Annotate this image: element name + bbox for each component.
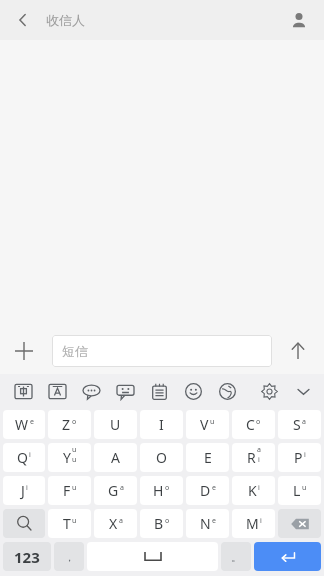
staticText: i [258,483,260,493]
staticText: F [63,481,71,500]
staticText: o [165,483,170,493]
staticText: S [293,415,301,434]
staticText: P [294,448,303,467]
staticText: u [72,483,77,493]
button[interactable]: K [232,476,275,505]
button[interactable]: B [140,509,183,538]
staticText: a [119,516,123,526]
staticText: T [63,514,71,533]
button[interactable]: Suggestions [74,374,108,408]
button[interactable]: Backspace [278,509,321,538]
staticText: W [15,415,29,434]
staticText: Z [62,415,71,434]
staticText: e [212,516,216,526]
staticText: u [72,516,77,526]
staticText: u [302,483,307,493]
button[interactable]: Q [3,443,45,472]
staticText: u [72,445,77,455]
staticText: u [72,455,77,465]
staticText: C [246,415,255,434]
staticText: o [72,417,77,427]
button[interactable]: Enter [254,542,321,571]
button[interactable]: Contacts [282,3,316,37]
staticText: i [260,516,262,526]
staticText: U [110,415,121,434]
button[interactable]: 。 [221,542,251,571]
button[interactable]: D [186,476,229,505]
button[interactable]: A [94,443,137,472]
staticText: N [200,514,211,533]
staticText: I [159,415,164,434]
button[interactable]: Message [108,374,142,408]
button[interactable]: U [94,410,137,439]
button[interactable]: I [140,410,183,439]
button[interactable]: M [232,509,275,538]
staticText: V [200,415,209,434]
staticText: i [29,450,31,460]
button[interactable]: Settings [252,374,286,408]
staticText: 收信人 [46,12,85,28]
staticText: E [204,448,212,467]
button[interactable]: Space [87,542,218,571]
staticText: X [109,514,118,533]
staticText: a [257,445,261,455]
button[interactable]: Z [48,410,91,439]
staticText: L [293,481,301,500]
button[interactable]: O [140,443,183,472]
button[interactable]: Chinese input [6,374,40,408]
button[interactable]: J [3,476,45,505]
button[interactable]: V [186,410,229,439]
staticText: e [30,417,34,427]
button[interactable]: H [140,476,183,505]
button[interactable]: E [186,443,229,472]
button[interactable]: Add attachment [6,333,42,369]
button[interactable]: G [94,476,137,505]
button[interactable]: N [186,509,229,538]
staticText: e [212,483,216,493]
button[interactable]: P [278,443,321,472]
staticText: H [153,481,164,500]
staticText: i [258,455,260,465]
button[interactable]: Send [280,333,316,369]
staticText: ， [64,550,75,564]
button[interactable]: ， [54,542,84,571]
staticText: O [156,448,167,467]
button[interactable]: Hide keyboard [286,374,320,408]
button[interactable]: T [48,509,91,538]
button[interactable]: Search [3,509,45,538]
button[interactable]: Voice [210,374,244,408]
staticText: G [108,481,119,500]
staticText: A [111,448,120,467]
button[interactable]: 短信 [52,335,272,367]
staticText: D [200,481,211,500]
staticText: 短信 [62,343,88,359]
staticText: u [210,417,215,427]
staticText: M [246,514,259,533]
button[interactable]: R [232,443,275,472]
button[interactable]: Text style [40,374,74,408]
button[interactable]: Emoji [176,374,210,408]
staticText: R [247,448,256,467]
staticText: B [154,514,164,533]
staticText: a [302,417,306,427]
button[interactable]: X [94,509,137,538]
staticText: Y [63,448,71,467]
staticText: J [21,481,25,500]
button[interactable]: Y [48,443,91,472]
staticText: i [304,450,306,460]
staticText: K [248,481,257,500]
button[interactable]: Back [6,3,40,37]
button[interactable]: S [278,410,321,439]
button[interactable]: L [278,476,321,505]
button[interactable]: 123 [3,542,51,571]
button[interactable]: C [232,410,275,439]
staticText: Q [17,448,28,467]
staticText: 。 [231,550,242,564]
button[interactable]: W [3,410,45,439]
button[interactable]: F [48,476,91,505]
staticText: o [165,516,170,526]
staticText: i [26,483,28,493]
button[interactable]: Clipboard [142,374,176,408]
staticText: a [120,483,124,493]
staticText: o [256,417,261,427]
